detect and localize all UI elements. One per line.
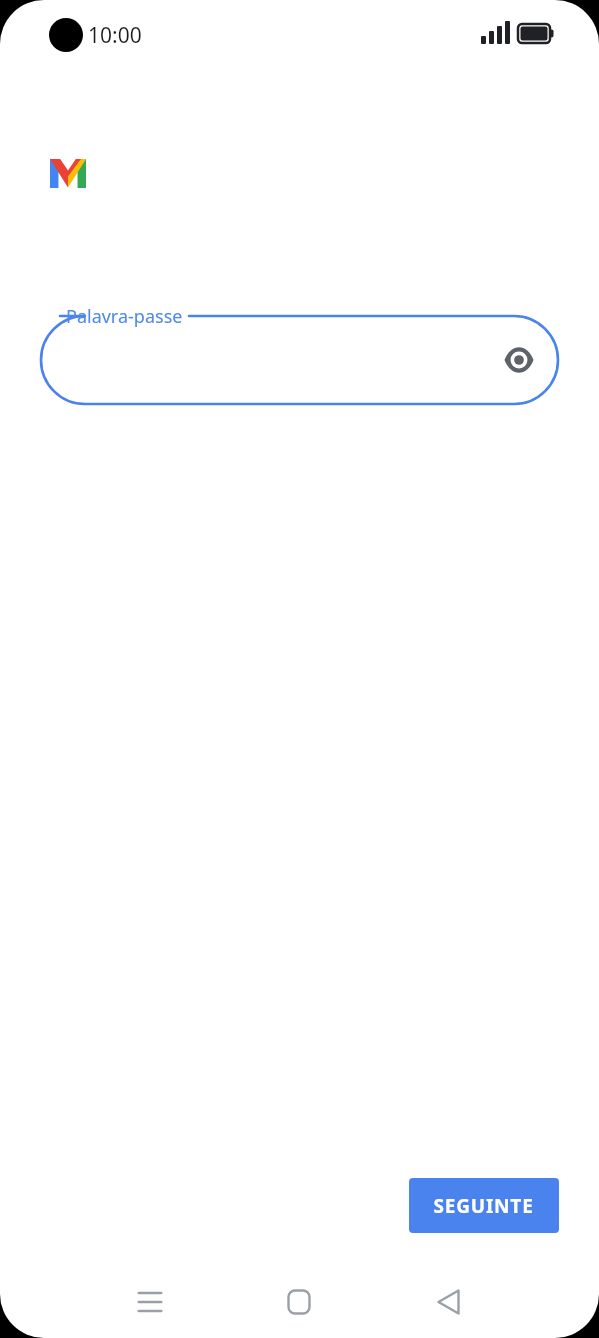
button[interactable]: Palavra-passe — [41, 316, 558, 404]
button[interactable] — [409, 1178, 559, 1233]
button[interactable]: Recentes — [110, 1262, 190, 1338]
button[interactable]: Mostrar palavra-passe — [495, 336, 543, 384]
button[interactable]: Voltar — [409, 1262, 489, 1338]
button[interactable]: Início — [259, 1262, 339, 1338]
